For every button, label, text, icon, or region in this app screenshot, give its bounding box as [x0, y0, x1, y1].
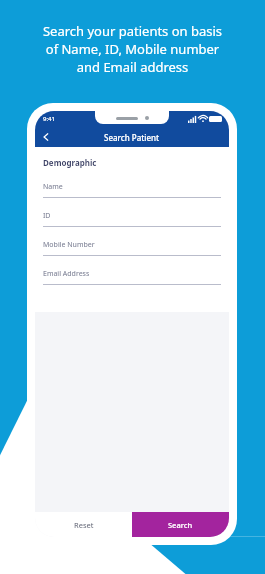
staticText: Email Address — [43, 269, 90, 279]
button[interactable]: Back — [35, 127, 57, 147]
staticText: Reset — [74, 520, 94, 530]
staticText: ID — [43, 211, 51, 221]
staticText: Demographic — [43, 157, 97, 168]
staticText: Name — [43, 182, 63, 192]
staticText: Search — [168, 520, 193, 530]
staticText: Mobile Number — [43, 240, 95, 250]
staticText: Search your patients on basis of Name, I… — [0, 22, 265, 76]
button[interactable]: Reset — [35, 512, 132, 537]
staticText: Search Patient — [104, 132, 160, 143]
staticText: 9:41 — [43, 115, 55, 123]
button[interactable]: Search — [132, 512, 229, 537]
